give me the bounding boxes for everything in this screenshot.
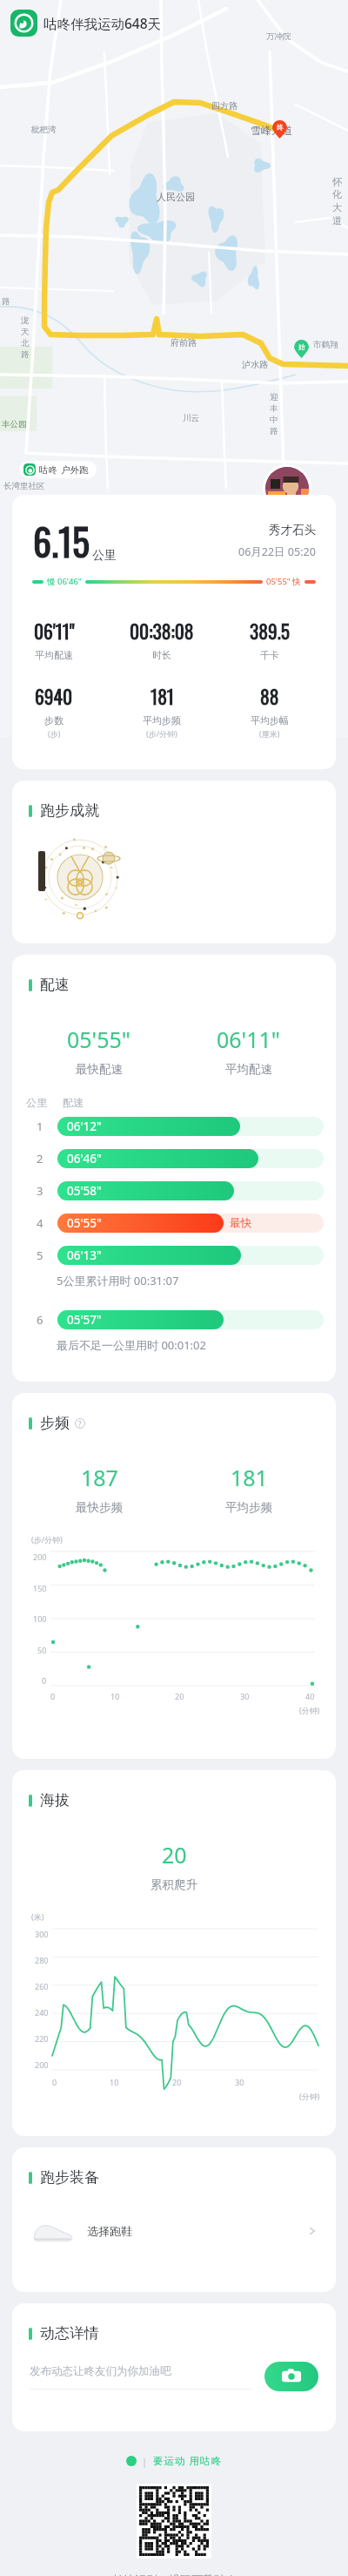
staticText: 389.5	[250, 617, 291, 645]
staticText: 公里	[26, 1096, 47, 1109]
staticText: 240	[35, 2007, 49, 2018]
staticText: 四方路	[211, 100, 238, 112]
staticText: 户外跑	[61, 464, 89, 476]
staticText: 220	[35, 2033, 49, 2044]
staticText: 泷 天 北 路	[21, 315, 30, 359]
staticText: 88	[260, 682, 279, 710]
staticText: 06月22日 05:20	[238, 544, 316, 559]
staticText: (厘米)	[259, 728, 280, 739]
staticText: 06'11"	[217, 1024, 281, 1054]
staticText: (米)	[31, 1911, 44, 1922]
staticText: 咕咚伴我运动648天	[43, 14, 162, 32]
staticText: (步/分钟)	[31, 1534, 63, 1545]
staticText: 长按识别二维码下载咕咚	[112, 2573, 237, 2576]
staticText: (分钟)	[299, 1705, 320, 1715]
staticText: 6.15	[33, 514, 90, 568]
staticText: 平均步频	[225, 1500, 272, 1515]
staticText: 步数	[44, 714, 64, 727]
staticText: 50	[37, 1645, 47, 1655]
staticText: 05'58"	[67, 1183, 102, 1199]
staticText: 要运动 用咕咚	[153, 2454, 222, 2468]
staticText: 平均步幅	[251, 714, 289, 727]
staticText: 20	[162, 1840, 187, 1869]
staticText: 步频	[40, 1414, 70, 1432]
staticText: 选择跑鞋	[87, 2224, 132, 2238]
staticText: 30	[235, 2077, 244, 2087]
staticText: 05'55"	[67, 1024, 131, 1054]
staticText: 最快	[230, 1216, 251, 1230]
staticText: 0	[42, 1675, 47, 1686]
staticText: 06'13"	[67, 1247, 102, 1263]
staticText: 05'55"	[266, 576, 291, 587]
button[interactable]: 咕咚	[19, 461, 97, 478]
staticText: 20	[172, 2077, 182, 2087]
staticText: 2	[37, 1151, 43, 1166]
staticText: 累积爬升	[151, 1877, 197, 1892]
staticText: 平均配速	[35, 649, 73, 661]
button[interactable]: 选择跑鞋	[12, 2204, 336, 2258]
staticText: 30	[240, 1691, 250, 1701]
staticText: 秀才石头	[269, 523, 316, 538]
staticText: 280	[35, 1955, 49, 1965]
staticText: 时长	[152, 649, 171, 661]
staticText: 海拔	[40, 1791, 70, 1809]
staticText: 最快配速	[76, 1062, 123, 1077]
staticText: 动态详情	[40, 2324, 99, 2343]
staticText: 终	[277, 123, 284, 132]
staticText: 150	[33, 1583, 47, 1593]
staticText: 5	[37, 1247, 43, 1263]
staticText: 慢	[47, 577, 56, 587]
staticText: 00:38:08	[130, 617, 194, 645]
staticText: 始	[298, 342, 305, 351]
staticText: 千卡	[260, 649, 279, 661]
staticText: 府前路	[171, 337, 197, 348]
staticText: 06'46"	[57, 576, 82, 587]
staticText: 181	[151, 682, 174, 710]
staticText: 187	[81, 1463, 118, 1492]
staticText: 4	[37, 1215, 43, 1231]
button[interactable]	[26, 834, 113, 921]
staticText: (分钟)	[299, 2091, 320, 2101]
staticText: 06'11"	[34, 617, 75, 645]
staticText: |	[142, 2455, 148, 2468]
staticText: 跑步成就	[40, 801, 99, 820]
staticText: 0	[52, 2077, 57, 2087]
staticText: 迎 丰 中 路	[270, 392, 278, 436]
staticText: 200	[33, 1552, 47, 1562]
staticText: 发布动态让咚友们为你加油吧	[30, 2364, 171, 2378]
staticText: 200	[35, 2059, 49, 2070]
staticText: 06'12"	[67, 1119, 102, 1134]
staticText: 5公里累计用时 00:31:07	[57, 1273, 179, 1288]
staticText: 路	[2, 296, 10, 307]
staticText: 0	[50, 1691, 56, 1701]
staticText: 市鹤翔	[313, 340, 338, 350]
staticText: 配速	[40, 976, 70, 994]
staticText: 配速	[63, 1096, 84, 1109]
staticText: 枇杷湾	[31, 125, 57, 135]
staticText: 1	[37, 1119, 43, 1134]
staticText: 长湾里社区	[3, 481, 45, 491]
staticText: 平均步频	[143, 714, 181, 727]
staticText: 最后不足一公里用时 00:01:02	[57, 1337, 206, 1353]
staticText: 181	[231, 1463, 268, 1492]
staticText: 3	[37, 1183, 43, 1199]
staticText: 丰公园	[2, 419, 27, 429]
staticText: 最快步频	[76, 1500, 123, 1515]
staticText: 10	[110, 1691, 120, 1701]
staticText: (步/分钟)	[146, 728, 177, 739]
staticText: 万冲院	[266, 31, 291, 42]
button[interactable]: 咕咚伴我运动648天	[10, 0, 348, 45]
staticText: 6	[37, 1312, 43, 1328]
staticText: 05'57"	[67, 1312, 102, 1328]
staticText: 快	[292, 577, 301, 587]
staticText: 300	[35, 1929, 49, 1939]
staticText: (步)	[48, 728, 61, 739]
staticText: 怀 化 大 道	[332, 176, 342, 226]
button[interactable]: Take photo	[264, 2362, 318, 2391]
staticText: 咕咚	[39, 464, 57, 476]
staticText: 100	[33, 1613, 47, 1624]
staticText: 260	[35, 1981, 49, 1991]
staticText: 06'46"	[67, 1151, 102, 1166]
staticText: 泸水路	[242, 359, 268, 370]
staticText: 6940	[35, 682, 73, 710]
